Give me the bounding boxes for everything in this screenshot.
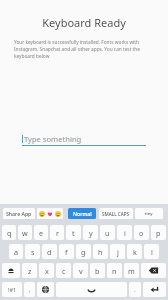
- button[interactable]: Shift: [2, 263, 20, 278]
- button[interactable]: Type something: [22, 131, 146, 146]
- button[interactable]: v: [73, 263, 88, 278]
- staticText: Keyboard Ready: [0, 15, 168, 30]
- staticText: x: [45, 266, 49, 276]
- button[interactable]: o: [134, 225, 149, 240]
- staticText: n: [112, 266, 117, 276]
- button[interactable]: n: [107, 263, 122, 278]
- staticText: Normal: [73, 210, 92, 217]
- button[interactable]: ,: [24, 282, 35, 297]
- button[interactable]: t: [66, 225, 81, 240]
- staticText: s: [31, 247, 35, 257]
- button[interactable]: l: [144, 244, 159, 259]
- button[interactable]: z: [22, 263, 37, 278]
- button[interactable]: j: [110, 244, 125, 259]
- button[interactable]: g: [76, 244, 91, 259]
- staticText: f: [65, 247, 68, 257]
- button[interactable]: q: [2, 225, 16, 240]
- staticText: SMALL CAPS: [102, 211, 130, 217]
- staticText: tiny: [145, 211, 153, 217]
- button[interactable]: i: [117, 225, 132, 240]
- button[interactable]: Enter: [143, 282, 166, 297]
- staticText: e: [39, 228, 44, 238]
- staticText: d: [47, 247, 52, 257]
- staticText: k: [133, 247, 137, 257]
- button[interactable]: s: [25, 244, 40, 259]
- staticText: t: [72, 228, 75, 238]
- button[interactable]: Switch language: [37, 282, 54, 297]
- button[interactable]: b: [90, 263, 105, 278]
- staticText: a: [14, 247, 19, 257]
- button[interactable]: r: [50, 225, 64, 240]
- button[interactable]: Backspace: [141, 263, 166, 278]
- staticText: p: [156, 228, 161, 238]
- staticText: j: [117, 247, 119, 257]
- staticText: o: [139, 228, 144, 238]
- staticText: ,: [29, 286, 31, 294]
- staticText: y: [89, 228, 93, 238]
- staticText: b: [95, 266, 100, 276]
- button[interactable]: e: [34, 225, 48, 240]
- button[interactable]: a: [9, 244, 23, 259]
- staticText: l: [151, 247, 153, 257]
- button[interactable]: h: [93, 244, 108, 259]
- button[interactable]: d: [42, 244, 57, 259]
- button[interactable]: Space: [56, 282, 127, 297]
- button[interactable]: Normal: [68, 208, 96, 219]
- button[interactable]: u: [100, 225, 115, 240]
- button[interactable]: w: [18, 225, 32, 240]
- button[interactable]: Share App: [3, 208, 35, 219]
- staticText: q: [7, 228, 12, 238]
- staticText: v: [79, 266, 83, 276]
- staticText: Your keyboard is successfully installed.…: [14, 39, 141, 60]
- staticText: .: [134, 286, 136, 294]
- button[interactable]: m: [124, 263, 139, 278]
- staticText: r: [56, 228, 59, 238]
- button[interactable]: p: [151, 225, 166, 240]
- button[interactable]: y: [83, 225, 98, 240]
- staticText: Type something: [24, 134, 82, 144]
- staticText: !#1: [8, 286, 17, 294]
- staticText: Share App: [6, 210, 32, 217]
- button[interactable]: !#1: [2, 282, 22, 297]
- button[interactable]: tiny: [135, 208, 163, 219]
- button[interactable]: .: [129, 282, 141, 297]
- staticText: g: [81, 247, 86, 257]
- staticText: u: [105, 228, 110, 238]
- staticText: c: [62, 266, 66, 276]
- staticText: h: [98, 247, 103, 257]
- button[interactable]: x: [39, 263, 54, 278]
- staticText: z: [28, 266, 32, 276]
- button[interactable]: c: [56, 263, 71, 278]
- button[interactable]: Emoji: [37, 208, 63, 219]
- button[interactable]: SMALL CAPS: [99, 208, 133, 219]
- staticText: w: [22, 228, 28, 238]
- button[interactable]: k: [127, 244, 142, 259]
- staticText: m: [128, 266, 135, 276]
- button[interactable]: f: [59, 244, 74, 259]
- staticText: i: [124, 228, 126, 238]
